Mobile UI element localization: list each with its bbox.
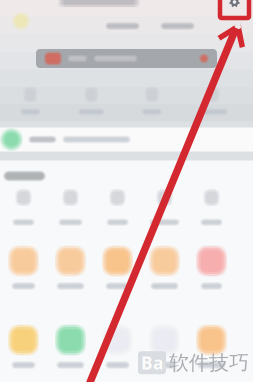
button[interactable]: Service xyxy=(188,188,235,226)
button[interactable]: App xyxy=(188,324,235,369)
button[interactable]: Promotion xyxy=(36,49,217,68)
button[interactable]: Quick action xyxy=(61,86,122,115)
button[interactable]: App xyxy=(47,324,94,369)
button[interactable]: Quick action xyxy=(121,86,182,115)
button[interactable]: Service xyxy=(0,188,47,226)
button[interactable]: Service xyxy=(141,188,188,226)
button[interactable]: Service xyxy=(47,188,94,226)
staticText: 软件技巧 xyxy=(169,350,249,375)
button[interactable]: Service xyxy=(94,188,141,226)
button[interactable]: App xyxy=(47,245,94,290)
button[interactable]: Notice xyxy=(0,127,253,151)
button[interactable]: App xyxy=(0,245,47,290)
button[interactable]: App xyxy=(94,324,141,369)
button[interactable]: App xyxy=(0,324,47,369)
button[interactable]: App xyxy=(141,324,188,369)
button[interactable]: App xyxy=(94,245,141,290)
staticText: Ba xyxy=(141,351,163,374)
button[interactable]: Quick action xyxy=(0,86,61,115)
button[interactable]: Settings xyxy=(220,0,249,18)
button[interactable]: Quick action xyxy=(182,86,243,115)
button[interactable]: App xyxy=(188,245,235,290)
button[interactable]: App xyxy=(141,245,188,290)
